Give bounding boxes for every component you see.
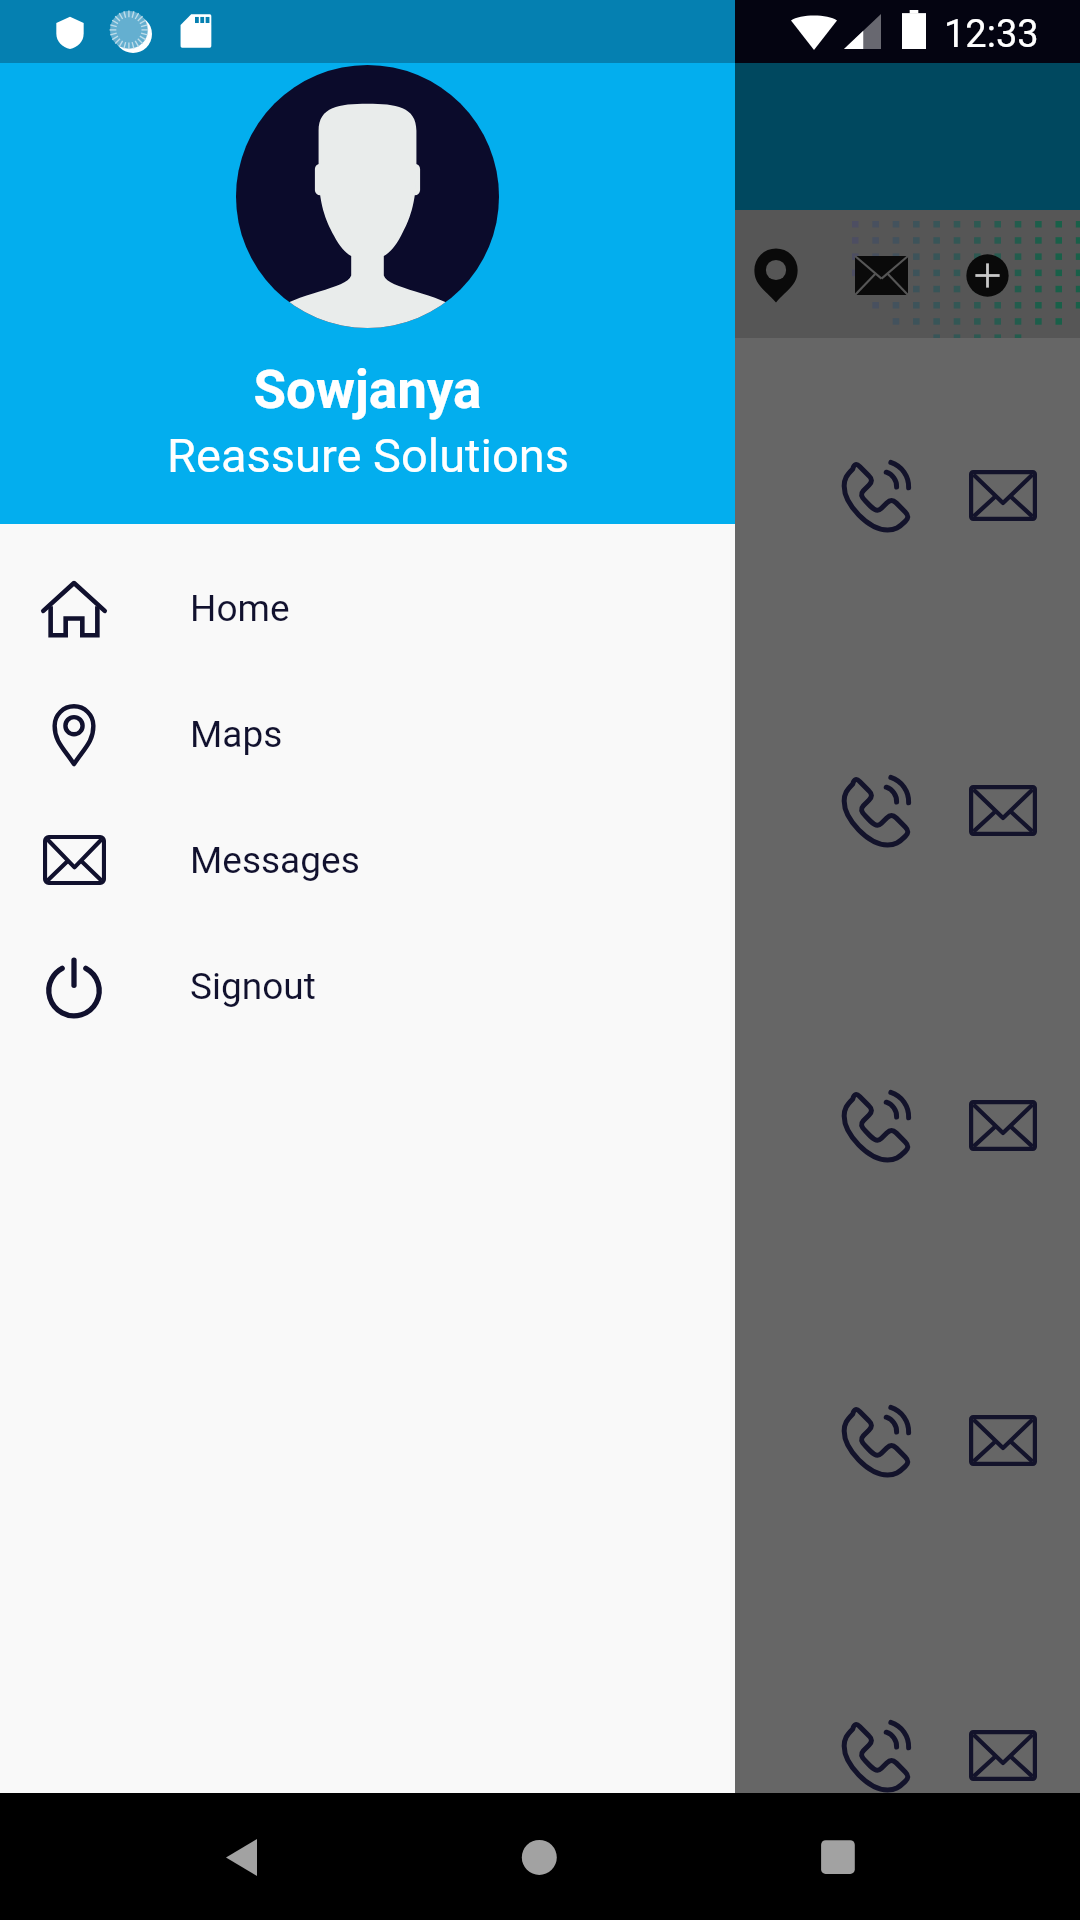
staticText: Sowjanya <box>253 359 482 421</box>
button[interactable]: Email <box>969 1100 1037 1151</box>
button[interactable]: Recent apps <box>787 1807 889 1903</box>
staticText: 12:33 <box>944 12 1039 57</box>
button[interactable]: Call <box>835 1712 923 1800</box>
button[interactable]: Call <box>835 1082 923 1170</box>
button[interactable]: Call <box>835 452 923 540</box>
button[interactable]: Home <box>488 1807 590 1903</box>
button[interactable]: Home <box>0 545 735 671</box>
staticText: Messages <box>190 839 360 882</box>
button[interactable]: Email <box>969 1415 1037 1466</box>
button[interactable]: Back <box>190 1807 292 1903</box>
staticText: Maps <box>190 713 283 756</box>
button[interactable]: Email <box>969 470 1037 521</box>
button[interactable]: Call <box>835 767 923 855</box>
button[interactable]: Call <box>835 1397 923 1485</box>
button[interactable]: Maps <box>0 671 735 797</box>
button[interactable]: Messages <box>0 797 735 923</box>
button[interactable]: Email <box>969 785 1037 836</box>
button[interactable]: Email <box>969 1730 1037 1781</box>
button[interactable]: Messages <box>855 256 908 295</box>
staticText: Home <box>190 587 290 630</box>
button[interactable]: Location <box>753 248 799 303</box>
staticText: Reassure Solutions <box>167 428 569 483</box>
button[interactable]: Add <box>965 253 1010 298</box>
button[interactable]: Signout <box>0 923 735 1049</box>
staticText: Signout <box>190 965 316 1008</box>
